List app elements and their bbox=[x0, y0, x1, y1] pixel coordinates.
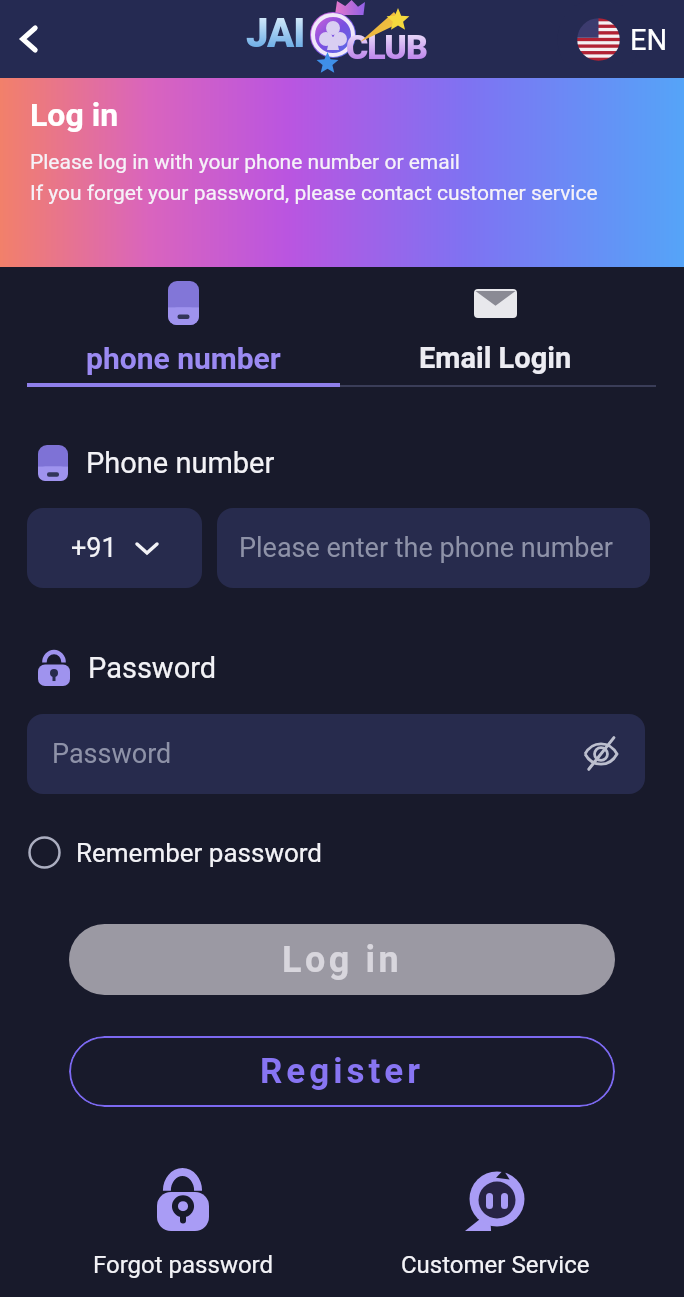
staticText: Customer Service bbox=[401, 1251, 590, 1279]
staticText: Phone number bbox=[86, 446, 275, 480]
button[interactable]: Email Login bbox=[339, 281, 652, 375]
staticText: CLUB bbox=[346, 27, 427, 67]
staticText: +91 bbox=[71, 532, 117, 564]
staticText: phone number bbox=[86, 341, 281, 376]
staticText: EN bbox=[630, 23, 668, 57]
button[interactable]: +91 bbox=[27, 508, 202, 588]
staticText: Please log in with your phone number or … bbox=[30, 150, 598, 205]
staticText: Please enter the phone number bbox=[239, 532, 613, 564]
button[interactable]: Remember password bbox=[28, 836, 323, 869]
staticText: Log in bbox=[282, 939, 403, 981]
staticText: Password bbox=[52, 738, 172, 770]
button[interactable] bbox=[0, 9, 60, 69]
button[interactable]: EN bbox=[577, 18, 668, 61]
button[interactable]: Forgot password bbox=[27, 1169, 339, 1279]
staticText: Log in bbox=[30, 96, 119, 134]
staticText: Forgot password bbox=[93, 1251, 274, 1279]
button[interactable]: Register bbox=[69, 1036, 615, 1107]
button[interactable]: Password bbox=[27, 714, 645, 794]
button[interactable]: Please enter the phone number bbox=[217, 508, 650, 588]
staticText: Password bbox=[88, 651, 217, 685]
button[interactable]: Customer Service bbox=[339, 1169, 652, 1279]
staticText: Remember password bbox=[76, 838, 323, 868]
staticText: Email Login bbox=[419, 341, 572, 375]
staticText: Register bbox=[260, 1051, 425, 1092]
staticText: JAI bbox=[246, 10, 305, 57]
button[interactable]: Log in bbox=[69, 924, 615, 995]
button[interactable]: phone number bbox=[27, 281, 339, 376]
